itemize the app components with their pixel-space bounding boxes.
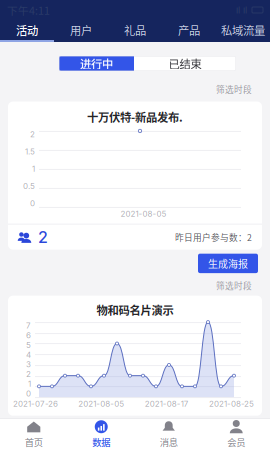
button[interactable]: 用户: [54, 20, 108, 42]
button[interactable]: 消息: [135, 419, 202, 450]
staticText: 6: [26, 330, 31, 340]
staticText: 首页: [25, 435, 43, 449]
staticText: 会员: [227, 435, 245, 449]
staticText: 私域流量: [221, 22, 265, 38]
button[interactable]: 进行中: [59, 56, 134, 71]
staticText: 1: [32, 164, 35, 174]
staticText: 已结束: [168, 55, 201, 72]
button[interactable]: 首页: [0, 419, 67, 450]
staticText: 下午4:11: [7, 2, 50, 18]
staticText: 物和码名片演示: [96, 302, 173, 318]
staticText: 昨日用户参与数：2: [175, 231, 252, 243]
staticText: 2: [26, 369, 31, 379]
staticText: 消息: [160, 435, 178, 449]
button[interactable]: 私域流量: [216, 20, 270, 42]
staticText: 0: [26, 389, 31, 398]
staticText: 生成海报: [208, 256, 248, 271]
button[interactable]: 会员: [202, 419, 270, 450]
staticText: 5: [26, 340, 31, 350]
staticText: 2021-08-05: [78, 399, 124, 409]
staticText: 1.5: [25, 147, 35, 157]
staticText: 2021-08-25: [209, 399, 254, 409]
staticText: 十万伏特-新品发布.: [87, 108, 183, 125]
staticText: 0: [30, 199, 35, 208]
staticText: 产品: [178, 22, 200, 38]
button[interactable]: 数据: [67, 419, 135, 450]
button[interactable]: 生成海报: [198, 254, 258, 273]
staticText: 4: [26, 350, 31, 360]
staticText: 2021-08-17: [145, 399, 189, 409]
staticText: 1: [28, 379, 31, 389]
button[interactable]: 筛选时段: [216, 278, 270, 293]
staticText: 活动: [16, 22, 38, 38]
staticText: 0.5: [23, 181, 35, 191]
button[interactable]: 已结束: [134, 56, 236, 71]
staticText: 用户: [70, 22, 92, 38]
staticText: 2: [38, 227, 48, 247]
button[interactable]: 活动: [0, 20, 54, 42]
button[interactable]: 产品: [162, 20, 216, 42]
button[interactable]: 礼品: [108, 20, 162, 42]
staticText: 筛选时段: [216, 83, 252, 95]
staticText: 2021-08-05: [120, 209, 166, 219]
staticText: 3: [26, 360, 31, 369]
staticText: 礼品: [124, 22, 146, 38]
staticText: 进行中: [80, 55, 113, 72]
staticText: 2: [30, 130, 35, 139]
staticText: 筛选时段: [216, 279, 252, 292]
staticText: ıl ıl: [236, 4, 247, 16]
staticText: 7: [26, 321, 31, 330]
staticText: 数据: [92, 435, 110, 449]
button[interactable]: 筛选时段: [216, 82, 270, 96]
staticText: 2021-07-26: [13, 399, 58, 409]
